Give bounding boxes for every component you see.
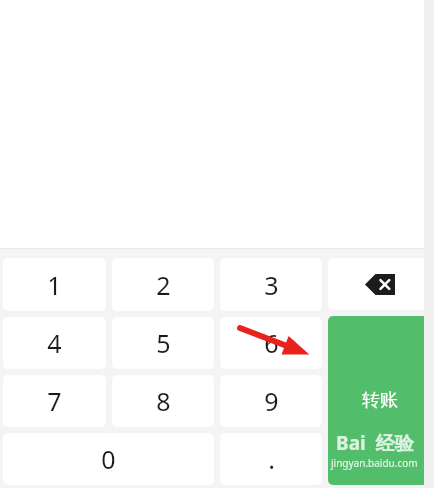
button[interactable]: 0 bbox=[3, 433, 214, 485]
button[interactable]: 9 bbox=[220, 375, 322, 427]
staticText: Bai 经验 bbox=[336, 430, 414, 456]
button[interactable]: 5 bbox=[112, 317, 214, 369]
staticText: 9 bbox=[264, 384, 279, 418]
staticText: 6 bbox=[264, 326, 279, 360]
staticText: 2 bbox=[156, 268, 171, 302]
button[interactable]: . bbox=[220, 433, 322, 485]
staticText: 转账 bbox=[362, 389, 398, 412]
staticText: 8 bbox=[156, 384, 171, 418]
button[interactable]: 3 bbox=[220, 258, 322, 311]
staticText: jingyan.baidu.com bbox=[331, 456, 418, 470]
button[interactable]: 1 bbox=[3, 258, 106, 311]
button[interactable]: Backspace bbox=[328, 258, 431, 310]
button[interactable]: 7 bbox=[3, 375, 106, 427]
staticText: 5 bbox=[156, 326, 171, 360]
staticText: . bbox=[268, 442, 275, 476]
button[interactable]: 4 bbox=[3, 317, 106, 369]
staticText: 7 bbox=[47, 384, 62, 418]
button[interactable]: 6 bbox=[220, 317, 322, 369]
button[interactable]: 转账 bbox=[328, 316, 431, 485]
staticText: 0 bbox=[101, 442, 116, 476]
staticText: 1 bbox=[47, 268, 62, 302]
staticText: 4 bbox=[47, 326, 62, 360]
button[interactable]: 8 bbox=[112, 375, 214, 427]
staticText: 3 bbox=[264, 268, 279, 302]
button[interactable]: 2 bbox=[112, 258, 214, 311]
